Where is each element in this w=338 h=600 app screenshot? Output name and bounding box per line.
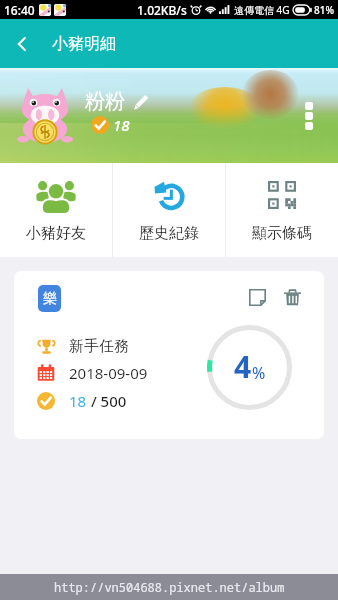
staticText: 1.02KB/s <box>137 2 187 18</box>
staticText: % <box>252 362 266 384</box>
button[interactable]: 歷史紀錄 <box>113 163 225 257</box>
staticText: 粉粉 <box>85 89 125 114</box>
staticText: 小豬明細 <box>52 34 116 54</box>
staticText: 新手任務 <box>69 337 129 356</box>
staticText: 遠傳電信 4G <box>234 3 290 17</box>
button[interactable]: Delete <box>279 284 305 310</box>
button[interactable]: Note <box>244 284 270 310</box>
staticText: 18 <box>69 391 87 411</box>
staticText: 樂 <box>43 290 57 308</box>
button[interactable]: 樂 <box>14 271 324 439</box>
staticText: 歷史紀錄 <box>139 224 199 243</box>
staticText: 2018-09-09 <box>69 363 148 383</box>
button[interactable]: Edit name <box>129 91 151 113</box>
button[interactable]: Back <box>0 19 44 68</box>
staticText: 4 <box>234 346 252 387</box>
button[interactable]: 顯示條碼 <box>226 163 338 257</box>
staticText: http://vn504688.pixnet.net/album <box>54 579 285 595</box>
button[interactable]: More options <box>296 94 322 138</box>
staticText: 18 <box>113 115 130 135</box>
staticText: 顯示條碼 <box>252 224 312 243</box>
staticText: / 500 <box>87 391 127 411</box>
staticText: 16:40 <box>4 2 35 18</box>
staticText: 81% <box>314 3 334 17</box>
button[interactable]: 小豬好友 <box>0 163 112 257</box>
staticText: 小豬好友 <box>26 224 86 243</box>
